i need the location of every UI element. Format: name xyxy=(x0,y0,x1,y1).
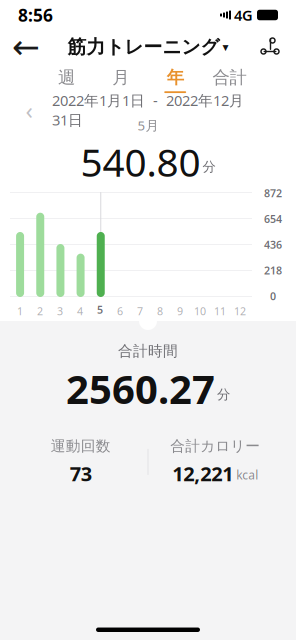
staticText: ▾ xyxy=(222,40,228,54)
staticText: 分 xyxy=(217,386,230,403)
staticText: 8:56 xyxy=(18,3,53,26)
staticText: 5 xyxy=(97,302,103,317)
button[interactable]: Back xyxy=(4,30,48,64)
staticText: 筋力トレーニング xyxy=(67,35,219,58)
staticText: ← xyxy=(12,28,40,66)
staticText: 12,221 xyxy=(172,460,233,487)
staticText: 73 xyxy=(70,460,92,487)
button[interactable]: 筋力トレーニング xyxy=(61,30,234,64)
staticText: 872 xyxy=(264,186,282,200)
staticText: 2 xyxy=(37,304,43,318)
button[interactable]: Share xyxy=(248,30,292,64)
staticText: 1 xyxy=(17,304,23,318)
staticText: 12 xyxy=(234,304,246,318)
staticText: 分 xyxy=(202,159,215,175)
staticText: 合計カロリー xyxy=(170,437,260,455)
staticText: 3 xyxy=(57,304,63,318)
staticText: 運動回数 xyxy=(51,437,111,455)
staticText: 月 xyxy=(112,67,129,88)
staticText: 654 xyxy=(264,212,282,226)
staticText: 218 xyxy=(264,263,282,277)
staticText: 5月 xyxy=(137,116,158,134)
button[interactable]: 月 xyxy=(103,65,139,95)
staticText: 10 xyxy=(194,304,206,318)
staticText: 2022年1月1日 - 2022年12月31日 xyxy=(52,90,244,129)
staticText: 4G xyxy=(234,5,253,25)
staticText: 8 xyxy=(157,304,163,318)
staticText: 436 xyxy=(264,237,282,252)
staticText: 年 xyxy=(167,67,184,88)
staticText: 合計 xyxy=(213,67,247,88)
staticText: 9 xyxy=(177,304,183,318)
staticText: 2560.27 xyxy=(66,362,215,415)
staticText: 11 xyxy=(214,304,226,318)
staticText: 540.80 xyxy=(80,136,200,187)
staticText: 合計時間 xyxy=(118,342,178,360)
staticText: 6 xyxy=(117,304,123,318)
staticText: kcal xyxy=(236,467,258,483)
staticText: 7 xyxy=(137,304,143,318)
button[interactable]: 合計 xyxy=(212,65,248,95)
button[interactable]: 週 xyxy=(48,65,84,95)
button[interactable]: 年 xyxy=(157,65,193,95)
button[interactable]: Previous period xyxy=(14,97,44,123)
staticText: 0 xyxy=(270,289,276,303)
staticText: 4 xyxy=(77,304,83,318)
staticText: 週 xyxy=(58,67,75,88)
staticText: ‹ xyxy=(25,94,32,126)
